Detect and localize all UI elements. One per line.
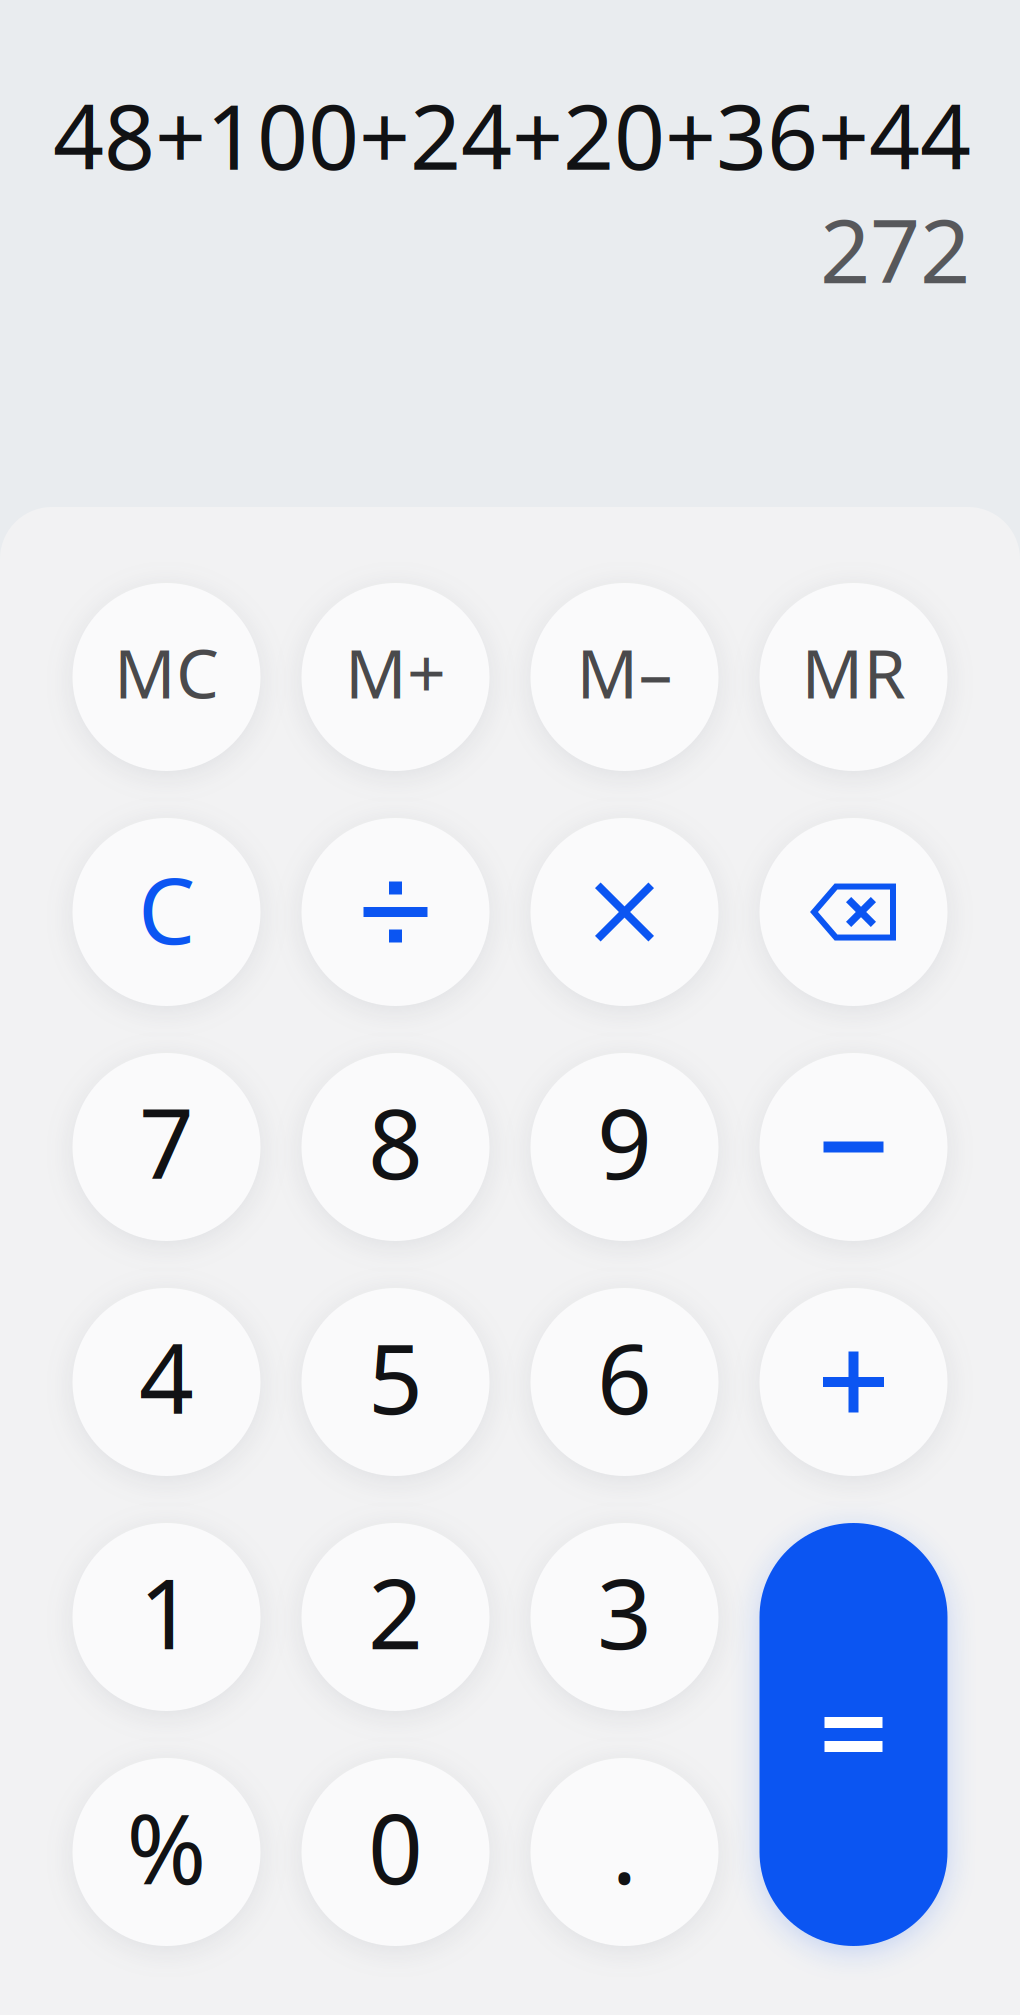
- staticText: 3: [597, 1548, 652, 1676]
- staticText: %: [126, 1783, 206, 1911]
- button[interactable]: Minus: [759, 1053, 947, 1241]
- staticText: 2: [368, 1548, 423, 1676]
- staticText: C: [138, 849, 195, 969]
- staticText: .: [611, 1783, 637, 1911]
- staticText: MC: [114, 627, 219, 717]
- button[interactable]: M+: [301, 583, 489, 771]
- button[interactable]: 6: [530, 1288, 718, 1476]
- staticText: M–: [576, 627, 672, 717]
- button[interactable]: MC: [72, 583, 260, 771]
- staticText: 1: [139, 1548, 194, 1676]
- staticText: MR: [801, 627, 905, 717]
- staticText: 8: [368, 1078, 423, 1206]
- button[interactable]: 9: [530, 1053, 718, 1241]
- staticText: 272: [820, 191, 970, 307]
- button[interactable]: Plus: [759, 1288, 947, 1476]
- button[interactable]: .: [530, 1758, 718, 1946]
- staticText: 6: [597, 1313, 652, 1441]
- button[interactable]: Equals: [759, 1523, 947, 1946]
- button[interactable]: %: [72, 1758, 260, 1946]
- staticText: 0: [368, 1783, 423, 1911]
- button[interactable]: 2: [301, 1523, 489, 1711]
- button[interactable]: 8: [301, 1053, 489, 1241]
- staticText: 4: [139, 1313, 194, 1441]
- button[interactable]: M–: [530, 583, 718, 771]
- staticText: 48+100+24+20+36+44: [53, 76, 971, 194]
- button[interactable]: 0: [301, 1758, 489, 1946]
- button[interactable]: Delete: [759, 818, 947, 1006]
- staticText: M+: [345, 627, 446, 717]
- button[interactable]: Divide: [301, 818, 489, 1006]
- button[interactable]: Multiply: [530, 818, 718, 1006]
- button[interactable]: 4: [72, 1288, 260, 1476]
- button[interactable]: C: [72, 818, 260, 1006]
- staticText: 5: [368, 1313, 423, 1441]
- button[interactable]: MR: [759, 583, 947, 771]
- button[interactable]: 5: [301, 1288, 489, 1476]
- staticText: 7: [139, 1078, 194, 1206]
- button[interactable]: 3: [530, 1523, 718, 1711]
- staticText: 9: [597, 1078, 652, 1206]
- button[interactable]: 1: [72, 1523, 260, 1711]
- button[interactable]: 7: [72, 1053, 260, 1241]
